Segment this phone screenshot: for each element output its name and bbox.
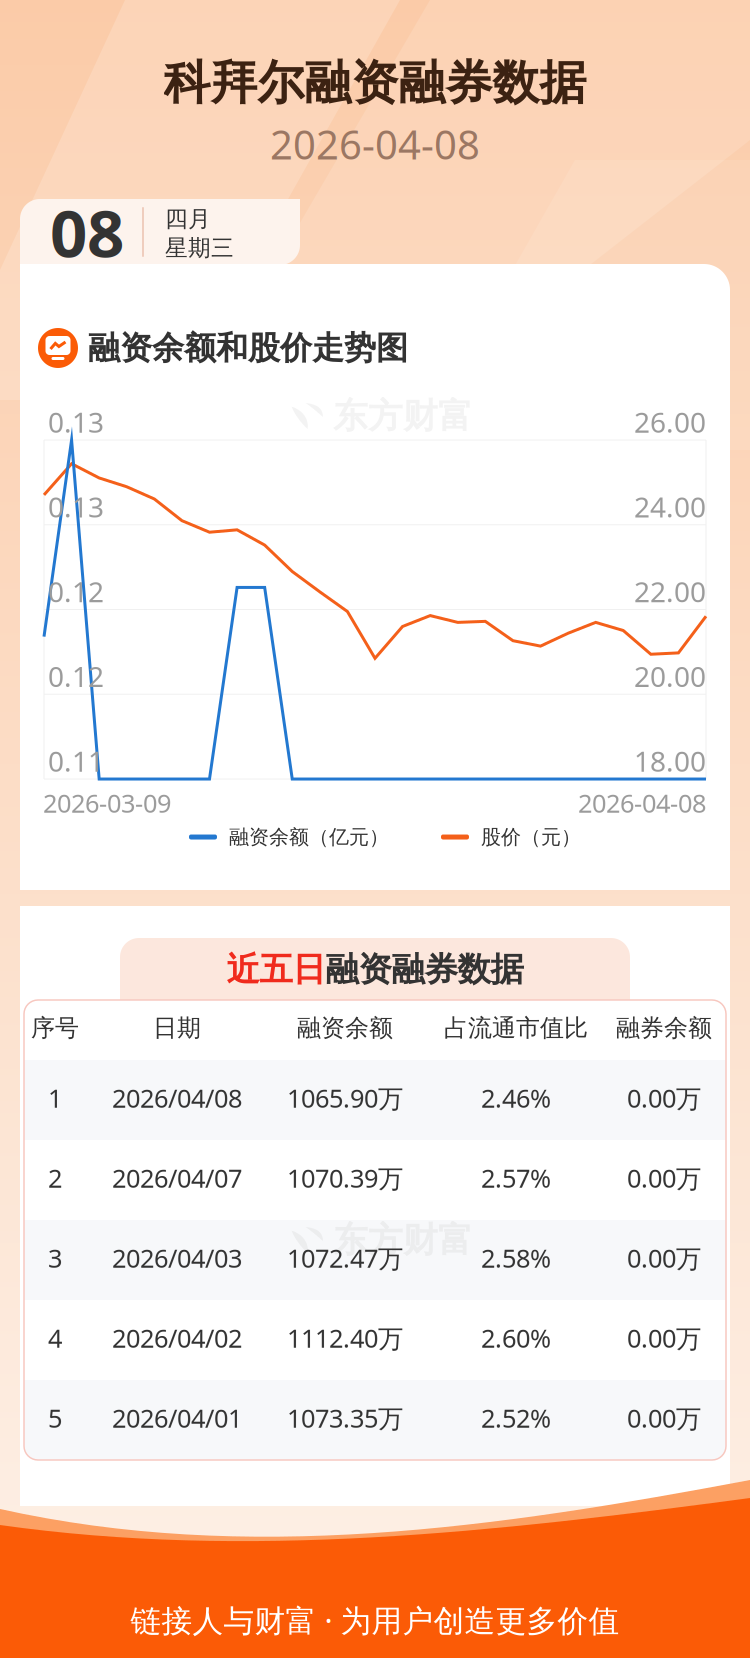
staticText: 星期三 <box>165 234 234 262</box>
staticText: 东方财富 <box>333 395 473 437</box>
staticText: 0.00万 <box>627 1241 701 1275</box>
staticText: 1112.40万 <box>287 1321 403 1355</box>
staticText: 近五日 <box>226 949 325 990</box>
staticText: 2026-04-08 <box>578 786 706 820</box>
staticText: 2026/04/02 <box>112 1321 242 1355</box>
staticText: 3 <box>48 1241 62 1275</box>
staticText: 2026-04-08 <box>270 117 480 170</box>
staticText: 1065.90万 <box>287 1081 403 1115</box>
staticText: 科拜尔融资融券数据 <box>163 54 586 112</box>
staticText: 26.00 <box>634 403 706 441</box>
staticText: 2026/04/03 <box>112 1241 242 1275</box>
staticText: 0.00万 <box>627 1161 701 1195</box>
staticText: 4 <box>48 1321 62 1355</box>
staticText: 1 <box>48 1081 62 1115</box>
staticText: 2026/04/07 <box>112 1161 242 1195</box>
staticText: 0.00万 <box>627 1321 701 1355</box>
staticText: 2026-03-09 <box>43 786 171 820</box>
staticText: 2026/04/01 <box>112 1401 242 1435</box>
staticText: 融券余额 <box>616 1013 712 1043</box>
staticText: 序号 <box>31 1013 79 1043</box>
staticText: 日期 <box>153 1013 201 1043</box>
staticText: 20.00 <box>634 658 706 695</box>
staticText: 2.52% <box>481 1401 551 1435</box>
staticText: 四月 <box>165 205 211 233</box>
staticText: 0.11 <box>48 742 104 780</box>
staticText: 链接人与财富 · 为用户创造更多价值 <box>130 1600 619 1640</box>
staticText: 东方财富 <box>333 1219 473 1261</box>
staticText: 1072.47万 <box>287 1241 403 1275</box>
staticText: 1073.35万 <box>287 1401 403 1435</box>
staticText: 22.00 <box>634 573 706 610</box>
staticText: 0.12 <box>48 658 104 695</box>
staticText: 0.00万 <box>627 1081 701 1115</box>
staticText: 0.00万 <box>627 1401 701 1435</box>
staticText: 0.13 <box>48 488 104 525</box>
staticText: 融资融券数据 <box>325 949 523 990</box>
staticText: 融资余额（亿元） <box>229 825 389 849</box>
staticText: 08 <box>50 189 124 275</box>
staticText: 股价（元） <box>481 825 581 849</box>
staticText: 18.00 <box>634 742 706 780</box>
staticText: 2026/04/08 <box>112 1081 242 1115</box>
staticText: 2.58% <box>481 1241 551 1275</box>
staticText: 24.00 <box>634 488 706 525</box>
staticText: 5 <box>48 1401 62 1435</box>
staticText: 2.57% <box>481 1161 551 1195</box>
staticText: 0.12 <box>48 573 104 610</box>
staticText: 融资余额和股价走势图 <box>88 328 408 368</box>
staticText: 2 <box>48 1161 62 1195</box>
staticText: 2.46% <box>481 1081 551 1115</box>
staticText: 融资余额 <box>297 1013 393 1043</box>
staticText: 1070.39万 <box>287 1161 403 1195</box>
staticText: 0.13 <box>48 403 104 441</box>
staticText: 占流通市值比 <box>444 1013 588 1043</box>
staticText: 2.60% <box>481 1321 551 1355</box>
